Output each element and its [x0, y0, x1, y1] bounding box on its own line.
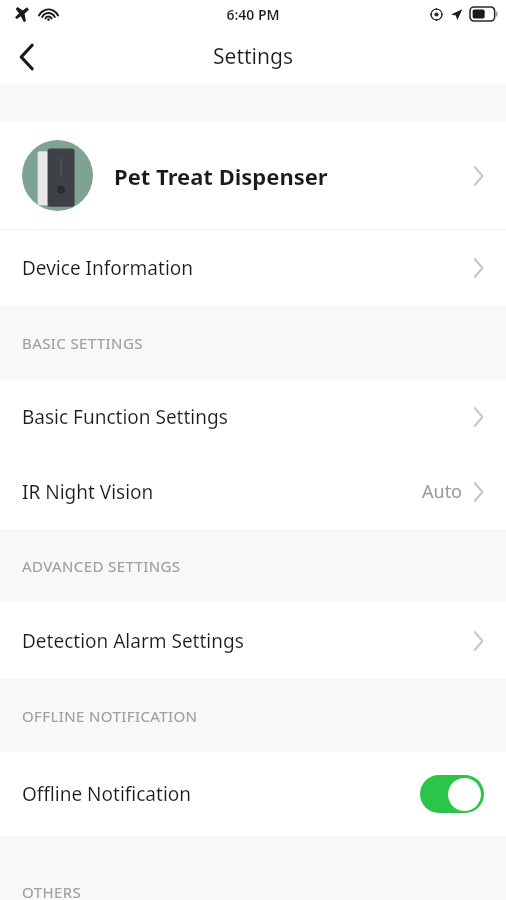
staticText: OTHERS	[22, 882, 82, 900]
button[interactable]: Offline Notification	[0, 752, 506, 836]
staticText: 6:40 PM	[226, 5, 280, 24]
button[interactable]: Detection Alarm Settings	[0, 602, 506, 679]
button[interactable]: Back	[0, 30, 54, 84]
button[interactable]: Pet Treat Dispenser	[0, 122, 506, 229]
staticText: ADVANCED SETTINGS	[22, 556, 181, 576]
staticText: OFFLINE NOTIFICATION	[22, 706, 198, 726]
staticText: Auto	[422, 479, 463, 504]
staticText: Device Information	[22, 255, 194, 281]
button[interactable]: IR Night Vision	[0, 454, 506, 529]
staticText: IR Night Vision	[22, 479, 154, 505]
staticText: Offline Notification	[22, 781, 192, 807]
staticText: Settings	[213, 42, 293, 71]
staticText: Basic Function Settings	[22, 404, 228, 430]
button[interactable]: Device Information	[0, 230, 506, 306]
button[interactable]: Offline Notification toggle	[420, 775, 484, 813]
staticText: Pet Treat Dispenser	[114, 161, 328, 191]
button[interactable]: Basic Function Settings	[0, 379, 506, 454]
staticText: Detection Alarm Settings	[22, 628, 244, 654]
staticText: BASIC SETTINGS	[22, 333, 143, 353]
